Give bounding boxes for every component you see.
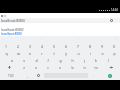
staticText: ?123 <box>8 74 14 78</box>
staticText: k <box>95 58 97 63</box>
staticText: a <box>11 58 13 63</box>
staticText: h <box>71 58 74 63</box>
button[interactable]: u <box>72 50 84 57</box>
button[interactable]: Go <box>99 71 120 80</box>
staticText: d <box>35 58 38 63</box>
button[interactable]: a <box>6 57 18 64</box>
button[interactable]: q <box>0 50 12 57</box>
button[interactable]: p <box>108 50 120 57</box>
staticText: j <box>84 58 85 63</box>
button[interactable]: f <box>42 57 54 64</box>
staticText: 7 <box>77 44 79 49</box>
staticText: f <box>47 58 49 63</box>
staticText: b <box>71 65 74 70</box>
staticText: t <box>53 51 55 56</box>
staticText: s <box>23 58 25 63</box>
button[interactable]: y <box>60 50 72 57</box>
button[interactable]: g <box>54 57 66 64</box>
button[interactable]: 3 <box>24 43 36 50</box>
button[interactable]: Shift <box>0 64 18 71</box>
staticText: 6 <box>65 44 67 49</box>
button[interactable]: 8 <box>84 43 96 50</box>
staticText: c <box>47 65 49 70</box>
button[interactable]: j <box>78 57 90 64</box>
staticText: w <box>17 51 20 56</box>
staticText: 1 <box>5 44 7 49</box>
button[interactable]: 4 <box>36 43 48 50</box>
staticText: u <box>77 51 80 56</box>
staticText: 8 <box>89 44 91 49</box>
button[interactable]: Clear <box>110 19 113 22</box>
staticText: x <box>35 65 37 70</box>
button[interactable]: z <box>18 64 30 71</box>
button[interactable]: w <box>12 50 24 57</box>
staticText: · <box>41 38 42 42</box>
staticText: e <box>29 51 31 56</box>
button[interactable]: localhost:8080/ <box>0 28 120 36</box>
staticText: r <box>41 51 43 56</box>
button[interactable]: 9 <box>96 43 108 50</box>
staticText: l <box>108 58 109 63</box>
button[interactable]: s <box>18 57 30 64</box>
staticText: o <box>101 51 104 56</box>
button[interactable]: t <box>48 50 60 57</box>
staticText: p <box>113 51 116 56</box>
button[interactable]: o <box>96 50 108 57</box>
button[interactable]: l <box>102 57 114 64</box>
staticText: · <box>3 38 4 42</box>
button[interactable]: 6 <box>60 43 72 50</box>
button[interactable]: r <box>36 50 48 57</box>
staticText: v <box>59 65 61 70</box>
staticText: y <box>65 51 67 56</box>
staticText: g <box>59 58 62 63</box>
button[interactable]: 7 <box>72 43 84 50</box>
button[interactable]: ?123 <box>0 71 22 80</box>
staticText: n <box>83 65 86 70</box>
button[interactable]: 1 <box>0 43 12 50</box>
button[interactable]: i <box>84 50 96 57</box>
staticText: 4 <box>41 44 43 49</box>
staticText: . <box>93 73 94 78</box>
button[interactable]: h <box>66 57 78 64</box>
button[interactable]: x <box>30 64 42 71</box>
button[interactable]: d <box>30 57 42 64</box>
button[interactable]: c <box>42 64 54 71</box>
staticText: 5 <box>53 44 55 49</box>
button[interactable]: e <box>24 50 36 57</box>
button[interactable]: n <box>78 64 90 71</box>
button[interactable]: Backspace <box>102 64 120 71</box>
button[interactable]: , <box>22 71 33 80</box>
button[interactable]: m <box>90 64 102 71</box>
staticText: localhost:8080 <box>1 32 22 36</box>
staticText: 3 <box>29 44 31 49</box>
staticText: q <box>5 51 8 56</box>
staticText: 14:34 <box>111 8 118 12</box>
button[interactable]: Emoji <box>33 71 44 80</box>
staticText: , <box>27 73 28 78</box>
button[interactable]: k <box>90 57 102 64</box>
staticText: · <box>116 38 117 42</box>
staticText: localhost:8080/ <box>1 18 26 23</box>
staticText: i <box>90 51 91 56</box>
staticText: z <box>23 65 25 70</box>
staticText: 9 <box>101 44 103 49</box>
button[interactable]: v <box>54 64 66 71</box>
staticText: 2 <box>17 44 19 49</box>
button[interactable]: 5 <box>48 43 60 50</box>
button[interactable]: 0 <box>108 43 120 50</box>
staticText: localhost:8080/ <box>1 28 24 32</box>
button[interactable]: 2 <box>12 43 24 50</box>
staticText: · <box>78 38 79 42</box>
staticText: 0 <box>113 44 115 49</box>
staticText: m <box>94 65 98 70</box>
button[interactable]: b <box>66 64 78 71</box>
